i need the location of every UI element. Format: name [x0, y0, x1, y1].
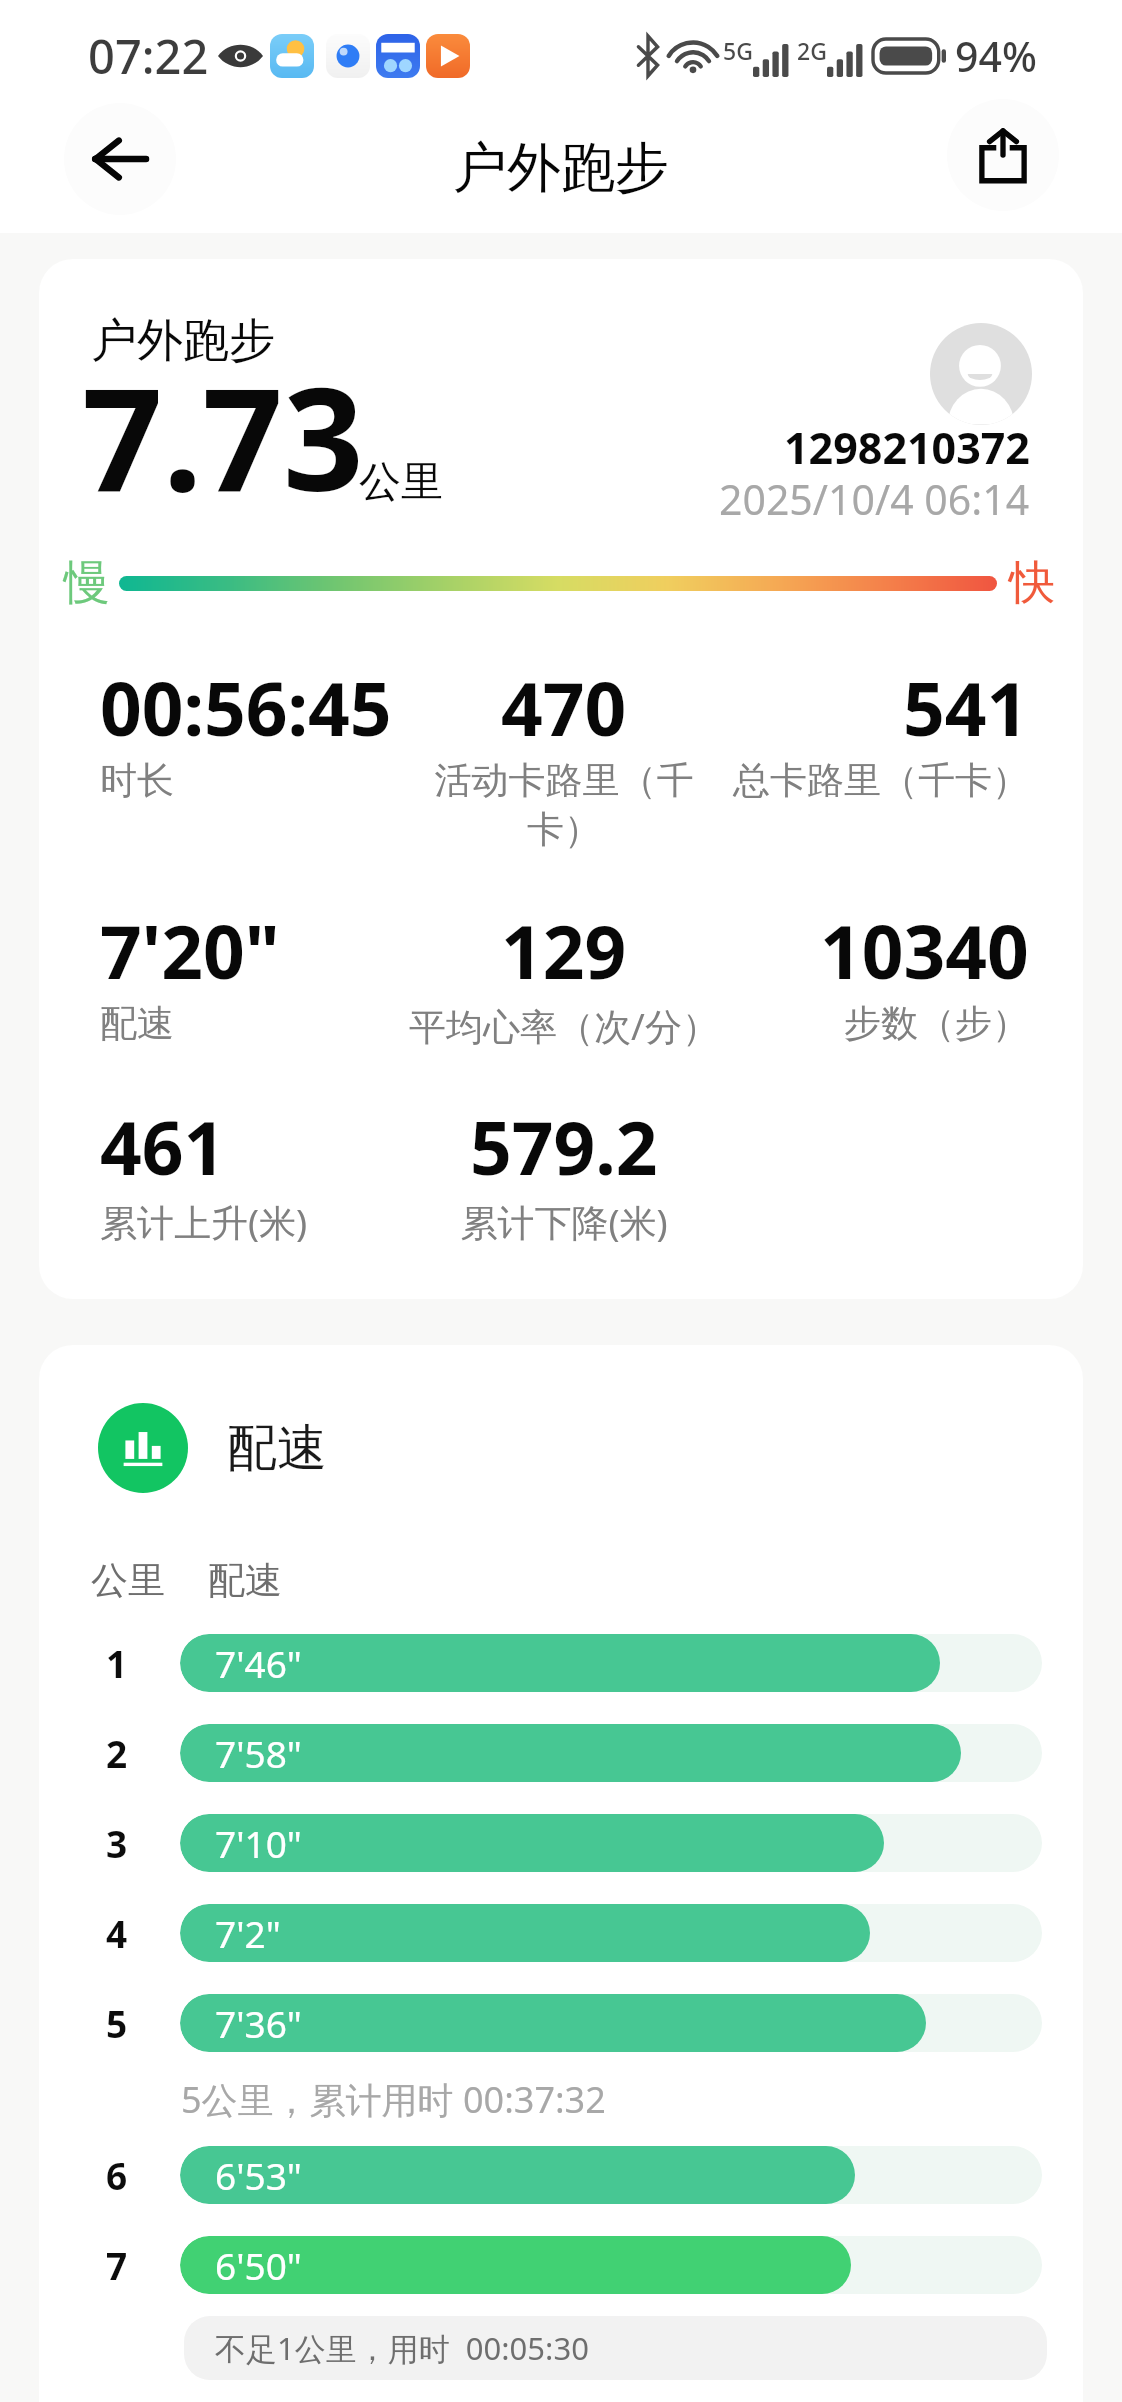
- staticText: 7'20": [100, 901, 280, 1000]
- staticText: 1298210372: [784, 418, 1030, 477]
- staticText: 户外跑步: [91, 312, 275, 370]
- staticText: 94%: [955, 28, 1037, 84]
- button[interactable]: Share: [947, 99, 1059, 211]
- staticText: 461: [100, 1097, 226, 1196]
- staticText: 2025/10/4 06:14: [719, 471, 1030, 527]
- staticText: 7'10": [215, 1818, 302, 1868]
- staticText: 7'2": [215, 1908, 281, 1958]
- staticText: 7: [106, 2240, 128, 2290]
- staticText: 快: [1009, 554, 1055, 612]
- staticText: 5G: [723, 35, 753, 66]
- staticText: 10340: [820, 901, 1029, 1000]
- staticText: 累计下降(米): [460, 1196, 668, 1247]
- staticText: 公里: [359, 456, 443, 509]
- staticText: 7'36": [215, 1998, 302, 2048]
- staticText: 配速: [100, 1000, 174, 1047]
- staticText: 户外跑步: [453, 134, 669, 202]
- staticText: 129: [501, 901, 627, 1000]
- staticText: 541: [903, 658, 1029, 757]
- staticText: 5: [106, 1998, 128, 2048]
- staticText: 7.73: [82, 340, 364, 532]
- staticText: 5公里，累计用时 00:37:32: [181, 2075, 1083, 2124]
- staticText: 07:22: [88, 24, 209, 88]
- staticText: 配速: [208, 1557, 282, 1604]
- staticText: 2: [106, 1728, 128, 1778]
- staticText: 平均心率（次/分）: [409, 1000, 719, 1051]
- staticText: 3: [106, 1818, 128, 1868]
- button[interactable]: User profile: [930, 323, 1032, 425]
- staticText: 470: [501, 658, 627, 757]
- staticText: 不足1公里，用时 00:05:30: [215, 2327, 589, 2369]
- staticText: 1: [106, 1638, 128, 1688]
- staticText: 累计上升(米): [100, 1196, 308, 1247]
- staticText: 时长: [100, 757, 174, 804]
- staticText: 6'53": [215, 2150, 302, 2200]
- staticText: 步数（步）: [844, 1000, 1029, 1047]
- staticText: 4: [106, 1908, 128, 1958]
- staticText: 7'46": [215, 1638, 302, 1688]
- staticText: 公里: [91, 1557, 165, 1604]
- staticText: 2G: [797, 35, 827, 66]
- staticText: 活动卡路里（千卡）: [409, 757, 719, 853]
- button[interactable]: Back: [64, 103, 176, 215]
- staticText: 慢: [64, 554, 110, 612]
- staticText: 6'50": [215, 2240, 302, 2290]
- staticText: 00:56:45: [100, 658, 392, 757]
- staticText: 6: [106, 2150, 128, 2200]
- staticText: 总卡路里（千卡）: [733, 757, 1029, 804]
- staticText: 7'58": [215, 1728, 302, 1778]
- staticText: 579.2: [470, 1097, 658, 1196]
- staticText: 配速: [227, 1417, 327, 1480]
